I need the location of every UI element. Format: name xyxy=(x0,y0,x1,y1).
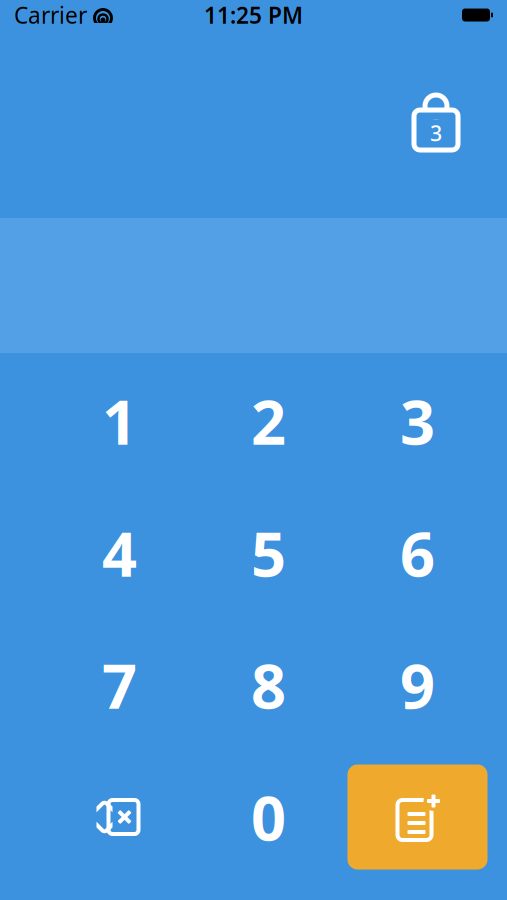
staticText: 3 xyxy=(430,119,442,147)
staticText: 1 xyxy=(102,380,137,462)
button[interactable]: 6 xyxy=(343,487,492,619)
button[interactable]: 9 xyxy=(343,619,492,751)
button[interactable]: New order xyxy=(343,751,492,883)
button[interactable]: 7 xyxy=(45,619,194,751)
button[interactable]: 2 xyxy=(194,355,343,487)
button[interactable]: Delete xyxy=(45,751,194,883)
staticText: 9 xyxy=(400,644,435,726)
staticText: 5 xyxy=(251,512,286,594)
button[interactable]: Cart, 3 items xyxy=(401,89,471,159)
staticText: 3 xyxy=(400,380,435,462)
staticText: 7 xyxy=(102,644,137,726)
staticText: Carrier xyxy=(14,0,87,30)
staticText: 0 xyxy=(251,776,286,858)
button[interactable]: 0 xyxy=(194,751,343,883)
staticText: 4 xyxy=(102,512,137,594)
button[interactable]: 5 xyxy=(194,487,343,619)
button[interactable]: 1 xyxy=(45,355,194,487)
staticText: 6 xyxy=(400,512,435,594)
staticText: 8 xyxy=(251,644,286,726)
button[interactable]: 3 xyxy=(343,355,492,487)
staticText: 2 xyxy=(251,380,286,462)
button[interactable]: 4 xyxy=(45,487,194,619)
staticText: 11:25 PM xyxy=(204,0,303,30)
button[interactable]: 8 xyxy=(194,619,343,751)
